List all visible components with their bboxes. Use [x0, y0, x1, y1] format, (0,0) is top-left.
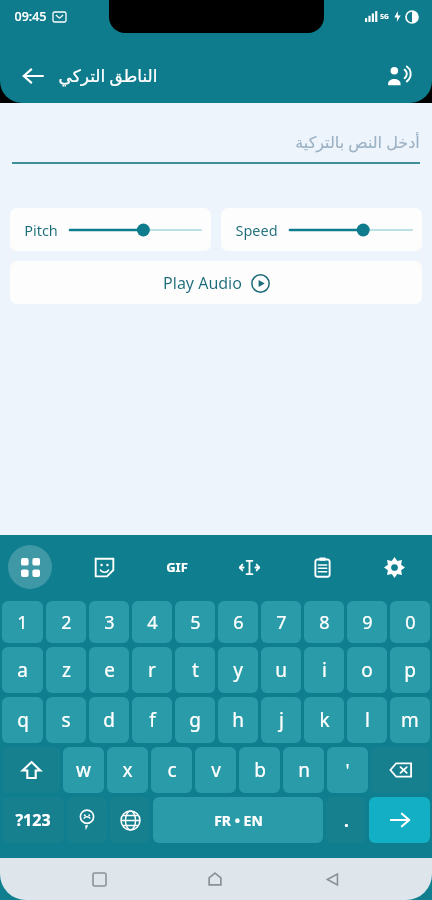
staticText: z	[62, 657, 71, 683]
button[interactable]: Enter	[369, 797, 430, 843]
button[interactable]: v	[195, 747, 236, 793]
staticText: .	[344, 809, 349, 832]
staticText: 3	[104, 610, 115, 635]
button[interactable]: Play Audio	[10, 261, 422, 304]
button[interactable]: Sticker	[84, 547, 124, 587]
button[interactable]: 7	[261, 601, 301, 643]
button[interactable]: h	[218, 697, 258, 743]
button[interactable]: c	[151, 747, 192, 793]
button[interactable]: k	[304, 697, 344, 743]
button[interactable]: ?123	[2, 797, 64, 843]
staticText: x	[122, 757, 133, 783]
staticText: d	[103, 707, 115, 733]
button[interactable]: m	[390, 697, 430, 743]
staticText: i	[322, 657, 327, 683]
button[interactable]: t	[175, 647, 215, 693]
button[interactable]: Shift	[2, 747, 60, 793]
staticText: j	[279, 707, 284, 733]
button[interactable]: Settings	[374, 547, 414, 587]
staticText: e	[104, 657, 115, 683]
button[interactable]: i	[304, 647, 344, 693]
staticText: k	[319, 707, 330, 733]
staticText: u	[275, 657, 287, 683]
button[interactable]: Home	[198, 862, 232, 896]
button[interactable]: 4	[132, 601, 172, 643]
button[interactable]: 8	[304, 601, 344, 643]
button[interactable]: 0	[390, 601, 430, 643]
button[interactable]: 6	[218, 601, 258, 643]
button[interactable]: y	[218, 647, 258, 693]
staticText: o	[361, 657, 373, 683]
staticText: Play Audio	[163, 272, 242, 294]
button[interactable]: 3	[89, 601, 129, 643]
button[interactable]: w	[63, 747, 104, 793]
staticText: 09:45	[14, 8, 47, 25]
button[interactable]: Voice	[378, 55, 420, 97]
button[interactable]: u	[261, 647, 301, 693]
staticText: 6	[233, 610, 244, 635]
button[interactable]: p	[390, 647, 430, 693]
staticText: r	[148, 657, 156, 683]
button[interactable]: n	[283, 747, 324, 793]
button[interactable]: 9	[347, 601, 387, 643]
staticText: 2	[61, 610, 72, 635]
button[interactable]: 5	[175, 601, 215, 643]
button[interactable]: l	[347, 697, 387, 743]
staticText: 1	[17, 610, 28, 635]
button[interactable]: z	[46, 647, 86, 693]
staticText: s	[61, 707, 71, 733]
button[interactable]: Recents	[82, 862, 116, 896]
staticText: n	[298, 757, 310, 783]
button[interactable]: Emoji	[67, 797, 107, 843]
button[interactable]: .	[326, 797, 366, 843]
button[interactable]: f	[132, 697, 172, 743]
staticText: y	[233, 657, 243, 683]
button[interactable]: 1	[2, 601, 43, 643]
staticText: Speed	[235, 220, 278, 240]
button[interactable]: Language	[110, 797, 150, 843]
button[interactable]: Back	[315, 862, 349, 896]
button[interactable]: q	[2, 697, 43, 743]
button[interactable]: Apps	[8, 545, 52, 589]
staticText: h	[232, 707, 244, 733]
staticText: 5	[190, 610, 201, 635]
staticText: a	[17, 657, 28, 683]
staticText: g	[189, 707, 201, 733]
button[interactable]: x	[107, 747, 148, 793]
button[interactable]: Space	[153, 797, 323, 843]
button[interactable]: Speed	[221, 208, 422, 251]
staticText: ?123	[15, 809, 51, 831]
staticText: 9	[362, 610, 373, 635]
staticText: أدخل النص بالتركية	[295, 131, 420, 153]
button[interactable]: Backspace	[371, 747, 430, 793]
button[interactable]: GIF	[157, 547, 197, 587]
staticText: t	[192, 657, 199, 683]
button[interactable]: '	[327, 747, 368, 793]
staticText: 7	[276, 610, 287, 635]
button[interactable]: 2	[46, 601, 86, 643]
button[interactable]: j	[261, 697, 301, 743]
button[interactable]: b	[239, 747, 280, 793]
button[interactable]: o	[347, 647, 387, 693]
staticText: GIF	[166, 558, 188, 576]
staticText: '	[345, 758, 350, 783]
staticText: f	[149, 707, 156, 733]
button[interactable]: g	[175, 697, 215, 743]
button[interactable]: r	[132, 647, 172, 693]
staticText: Pitch	[24, 220, 58, 240]
staticText: FR • EN	[214, 811, 263, 830]
button[interactable]: Pitch	[10, 208, 211, 251]
button[interactable]: Back	[12, 55, 54, 97]
button[interactable]: Clipboard	[302, 547, 342, 587]
staticText: w	[76, 757, 91, 783]
button[interactable]: d	[89, 697, 129, 743]
button[interactable]: e	[89, 647, 129, 693]
staticText: b	[254, 757, 266, 783]
staticText: v	[211, 757, 221, 783]
button[interactable]: s	[46, 697, 86, 743]
button[interactable]: Cursor	[229, 547, 269, 587]
button[interactable]: a	[2, 647, 43, 693]
staticText: q	[17, 707, 29, 733]
button[interactable]: أدخل النص بالتركية	[12, 127, 420, 164]
staticText: الناطق التركي	[58, 64, 158, 87]
